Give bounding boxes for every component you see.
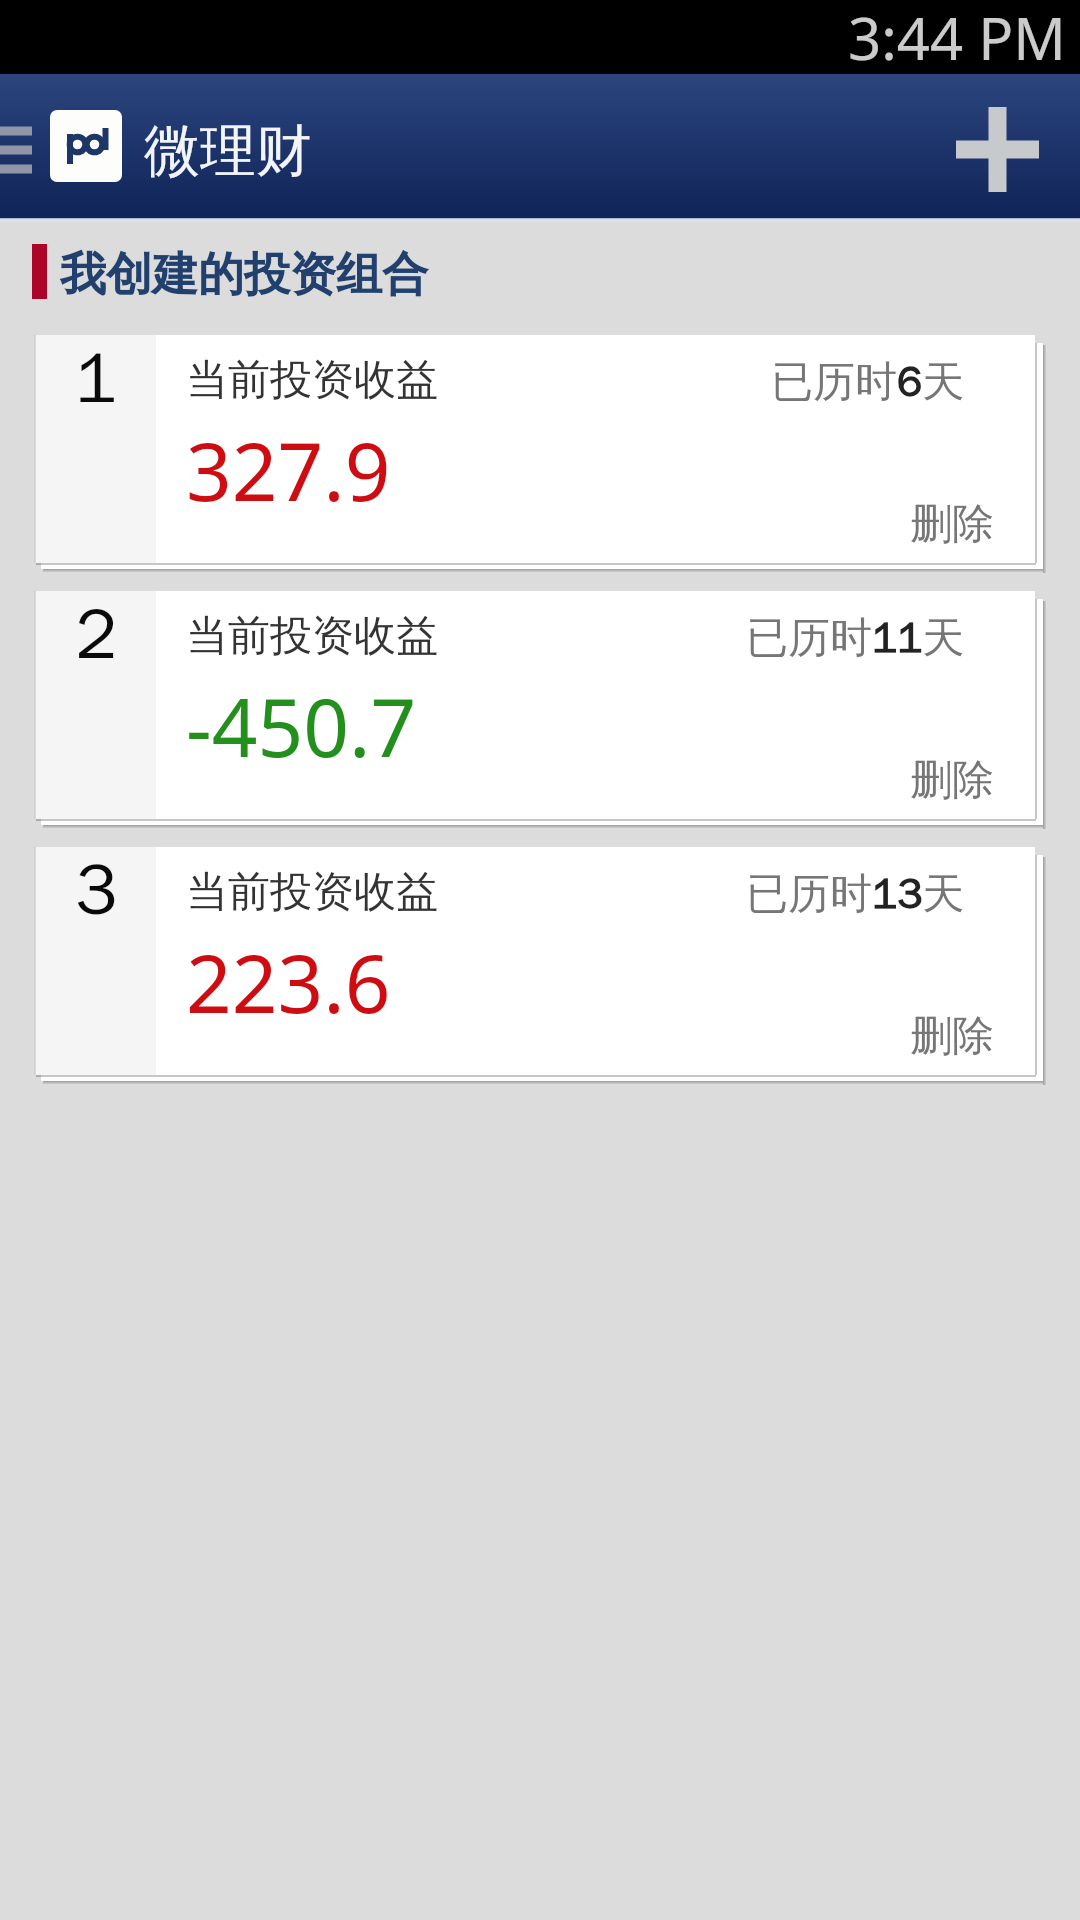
staticText: 2 xyxy=(75,591,117,679)
button[interactable]: 删除 xyxy=(910,498,1035,563)
staticText: 我创建的投资组合 xyxy=(60,246,428,304)
staticText: 当前投资收益 xyxy=(186,610,438,663)
staticText: 当前投资收益 xyxy=(186,866,438,919)
button[interactable]: 3 xyxy=(36,847,1035,1075)
staticText: -450.7 xyxy=(186,671,417,780)
button[interactable]: Add xyxy=(950,81,1080,211)
button[interactable]: 删除 xyxy=(910,754,1035,819)
staticText: 3 xyxy=(75,847,117,935)
button[interactable]: 1 xyxy=(36,335,1035,563)
staticText: 删除 xyxy=(910,754,994,807)
staticText: 当前投资收益 xyxy=(186,354,438,407)
staticText: 已历时11天 xyxy=(746,612,965,665)
button[interactable]: Menu xyxy=(0,106,40,186)
staticText: 已历时13天 xyxy=(746,868,965,921)
staticText: 删除 xyxy=(910,1010,994,1063)
button[interactable]: 2 xyxy=(36,591,1035,819)
staticText: 微理财 xyxy=(144,116,312,187)
staticText: 327.9 xyxy=(186,415,391,524)
staticText: 删除 xyxy=(910,498,994,551)
staticText: 3:44 PM xyxy=(848,0,1066,72)
staticText: 223.6 xyxy=(186,927,391,1036)
button[interactable]: 删除 xyxy=(910,1010,1035,1075)
staticText: 已历时6天 xyxy=(771,356,965,409)
staticText: 1 xyxy=(75,335,117,423)
